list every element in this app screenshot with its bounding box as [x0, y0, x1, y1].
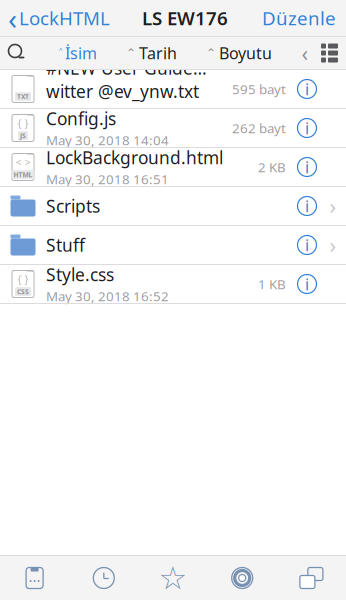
button[interactable]: Info: [294, 115, 320, 141]
button[interactable]: Search: [0, 37, 34, 69]
staticText: 1 KB: [258, 275, 286, 293]
staticText: ☆: [158, 560, 187, 596]
staticText: May 30, 2018 16:52: [46, 287, 169, 305]
staticText: Scripts: [46, 194, 100, 217]
staticText: < >: [15, 155, 30, 169]
staticText: ⌃: [206, 46, 216, 60]
staticText: #NEW User Guide…witter @ev_ynw.txt: [46, 57, 207, 103]
staticText: ›: [329, 192, 336, 220]
staticText: { }: [17, 272, 28, 286]
button[interactable]: < >: [0, 148, 346, 186]
staticText: ˄: [59, 45, 62, 61]
button[interactable]: Scripts: [0, 187, 346, 225]
staticText: CSS: [17, 287, 29, 296]
staticText: 262 bayt: [232, 119, 286, 137]
button[interactable]: Recents: [69, 565, 138, 591]
staticText: LS EW176: [142, 6, 228, 30]
button[interactable]: ⌃: [202, 38, 276, 68]
staticText: LockBackground.html: [46, 146, 223, 169]
button[interactable]: Stuff: [0, 226, 346, 264]
button[interactable]: Windows: [277, 565, 346, 591]
staticText: Düzenle: [262, 6, 336, 30]
staticText: TXT: [17, 92, 29, 101]
staticText: i: [305, 195, 309, 217]
button[interactable]: Settings: [208, 565, 277, 591]
button[interactable]: ‹: [0, 0, 118, 36]
button[interactable]: [0, 70, 346, 108]
staticText: ‹: [8, 0, 17, 37]
button[interactable]: ˄: [55, 38, 101, 68]
button[interactable]: Info: [294, 232, 320, 258]
button[interactable]: Clipboard: [0, 565, 69, 591]
staticText: i: [305, 156, 309, 178]
staticText: 2 KB: [258, 158, 286, 176]
staticText: Tarih: [139, 42, 177, 64]
button[interactable]: Info: [294, 271, 320, 297]
staticText: i: [305, 273, 309, 295]
staticText: ⌃: [126, 46, 136, 60]
staticText: Config.js: [46, 107, 116, 130]
staticText: HTML: [13, 170, 32, 179]
button[interactable]: Düzenle: [252, 0, 346, 36]
staticText: JS: [20, 131, 26, 140]
button[interactable]: View mode: [313, 37, 346, 69]
button[interactable]: { }: [0, 265, 346, 303]
staticText: May 30, 2018 14:04: [46, 131, 169, 149]
staticText: Stuff: [46, 233, 85, 256]
button[interactable]: Favorites: [138, 565, 208, 591]
staticText: 595 bayt: [232, 80, 286, 98]
staticText: i: [305, 78, 309, 100]
button[interactable]: { }: [0, 109, 346, 147]
staticText: ›: [329, 231, 336, 259]
staticText: Boyutu: [219, 42, 272, 64]
button[interactable]: Previous: [297, 38, 313, 68]
staticText: İsim: [65, 42, 97, 64]
staticText: i: [305, 117, 309, 139]
button[interactable]: Info: [294, 193, 320, 219]
staticText: Style.css: [46, 263, 114, 286]
button[interactable]: Info: [294, 76, 320, 102]
staticText: { }: [17, 116, 28, 130]
staticText: LockHTML: [19, 6, 110, 30]
button[interactable]: ⌃: [122, 38, 181, 68]
staticText: May 30, 2018 16:51: [46, 170, 169, 188]
staticText: ‹: [301, 39, 308, 67]
staticText: Haz 19, 2018 17:19: [46, 104, 166, 121]
button[interactable]: Info: [294, 154, 320, 180]
staticText: i: [305, 234, 309, 256]
